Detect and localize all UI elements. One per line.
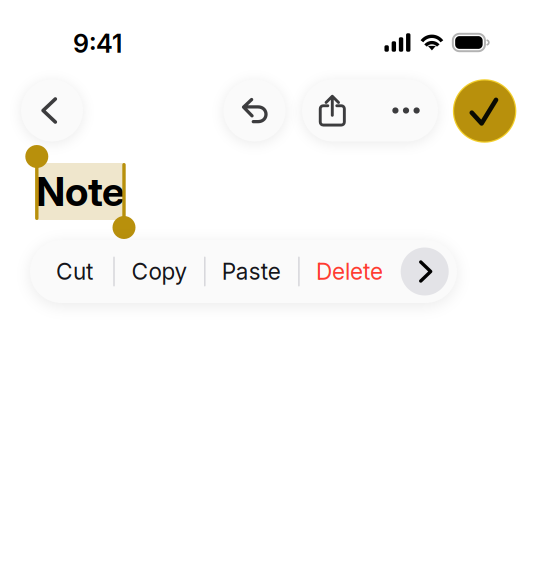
button[interactable]: More bbox=[398, 240, 452, 303]
staticText: Cut bbox=[56, 258, 93, 285]
staticText: Paste bbox=[222, 258, 281, 285]
button[interactable]: Back bbox=[21, 79, 83, 141]
button[interactable]: Paste bbox=[205, 240, 298, 303]
button[interactable]: Copy bbox=[114, 240, 204, 303]
button[interactable]: Undo bbox=[223, 79, 285, 141]
button[interactable]: Done bbox=[453, 79, 517, 143]
button[interactable]: Share bbox=[298, 79, 366, 141]
staticText: Note bbox=[36, 167, 125, 216]
staticText: 9:41 bbox=[73, 28, 122, 59]
button[interactable]: Delete bbox=[297, 240, 401, 303]
button[interactable]: More options bbox=[372, 79, 440, 141]
staticText: Delete bbox=[316, 258, 383, 285]
staticText: Copy bbox=[131, 258, 187, 285]
button[interactable]: Cut bbox=[32, 240, 116, 303]
